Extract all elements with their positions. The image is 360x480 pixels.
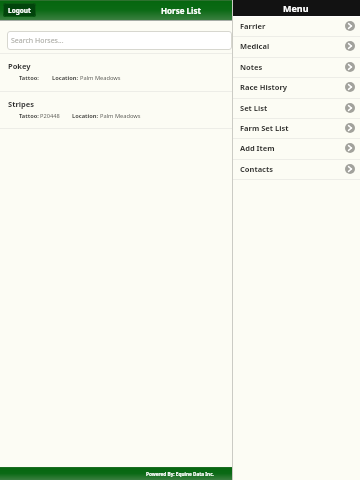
staticText: Notes — [240, 62, 263, 72]
button[interactable]: Race History — [232, 77, 360, 97]
other: Open Notes — [345, 62, 355, 72]
staticText: Powered By: Equine Data Inc. — [146, 471, 214, 477]
button[interactable]: Stripes — [0, 91, 232, 128]
button[interactable]: Farm Set List — [232, 118, 360, 138]
button[interactable]: Logout — [3, 3, 36, 17]
staticText: P20448 — [40, 112, 60, 120]
button[interactable]: Farrier — [232, 16, 360, 36]
staticText: Set List — [240, 103, 268, 113]
other: Open Contacts — [345, 164, 355, 174]
staticText: Tattoo: — [19, 112, 39, 120]
other: Open Farrier — [345, 21, 355, 31]
staticText: Logout — [8, 6, 31, 15]
other: Open Medical — [345, 41, 355, 51]
staticText: Add Item — [240, 143, 275, 153]
staticText: Horse List — [161, 5, 201, 16]
button[interactable]: Set List — [232, 98, 360, 118]
staticText: Menu — [283, 2, 309, 14]
staticText: Farm Set List — [240, 123, 289, 133]
staticText: Medical — [240, 41, 270, 51]
staticText: Tattoo: — [19, 74, 39, 82]
button[interactable]: Search Horses... — [7, 31, 232, 50]
staticText: Stripes — [8, 99, 34, 109]
staticText: Farrier — [240, 21, 266, 31]
other: Open Farm Set List — [345, 123, 355, 133]
staticText: Location: — [52, 74, 79, 82]
button[interactable]: Notes — [232, 57, 360, 77]
other: Open Set List — [345, 103, 355, 113]
other: Open Race History — [345, 82, 355, 92]
button[interactable]: Add Item — [232, 138, 360, 158]
staticText: Location: — [72, 112, 99, 120]
other: Open Add Item — [345, 143, 355, 153]
staticText: Contacts — [240, 164, 274, 174]
button[interactable]: Medical — [232, 36, 360, 56]
staticText: Pokey — [8, 61, 31, 71]
staticText: Palm Meadows — [100, 112, 141, 120]
button[interactable]: Contacts — [232, 159, 360, 179]
staticText: Search Horses... — [11, 36, 64, 46]
button[interactable]: Pokey — [0, 53, 232, 91]
staticText: Palm Meadows — [80, 74, 121, 82]
staticText: Race History — [240, 82, 288, 92]
